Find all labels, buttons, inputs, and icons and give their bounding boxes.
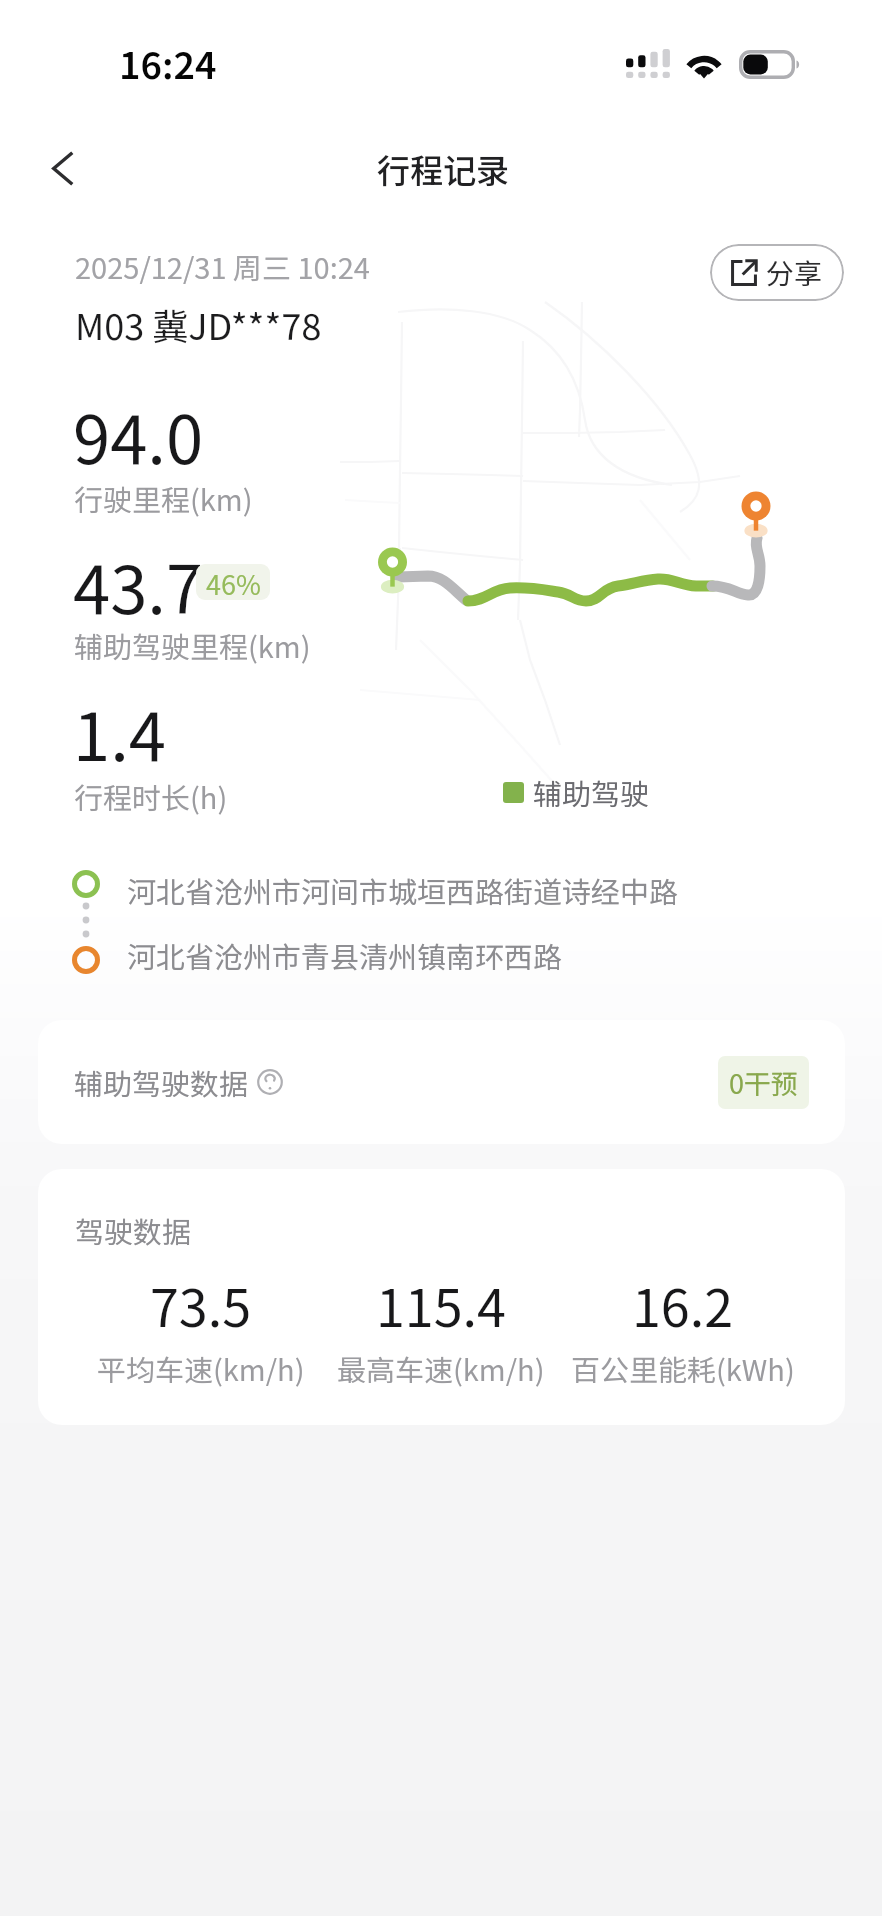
staticText: 辅助驾驶 [533, 771, 650, 813]
staticText: 行程时长(h) [74, 775, 228, 817]
staticText: 94.0 [73, 386, 204, 483]
staticText: 行程记录 [377, 145, 509, 193]
staticText: 河北省沧州市河间市城垣西路街道诗经中路 [127, 869, 679, 911]
staticText: M03 冀JD***78 [75, 298, 322, 350]
staticText: 73.5 [150, 1267, 252, 1342]
staticText: 平均车速(km/h) [97, 1347, 305, 1389]
staticText: 分享 [766, 252, 823, 293]
button[interactable]: 分享 [710, 244, 844, 301]
staticText: 43.7 [73, 536, 204, 633]
staticText: 16.2 [632, 1267, 734, 1342]
staticText: 驾驶数据 [75, 1209, 192, 1251]
staticText: 16:24 [119, 36, 217, 90]
staticText: 行驶里程(km) [74, 477, 253, 519]
button[interactable]: 辅助驾驶数据 [38, 1020, 845, 1144]
staticText: 辅助驾驶里程(km) [74, 624, 311, 666]
staticText: 115.4 [376, 1267, 506, 1342]
staticText: 河北省沧州市青县清州镇南环西路 [127, 934, 563, 976]
staticText: 0干预 [729, 1063, 798, 1102]
staticText: 1.4 [73, 683, 166, 780]
staticText: 46% [206, 564, 261, 600]
button[interactable]: Back [23, 132, 103, 204]
staticText: 最高车速(km/h) [337, 1347, 545, 1389]
staticText: 2025/12/31 周三 10:24 [75, 245, 370, 287]
staticText: 辅助驾驶数据 [74, 1061, 249, 1103]
staticText: 百公里能耗(kWh) [571, 1347, 795, 1389]
